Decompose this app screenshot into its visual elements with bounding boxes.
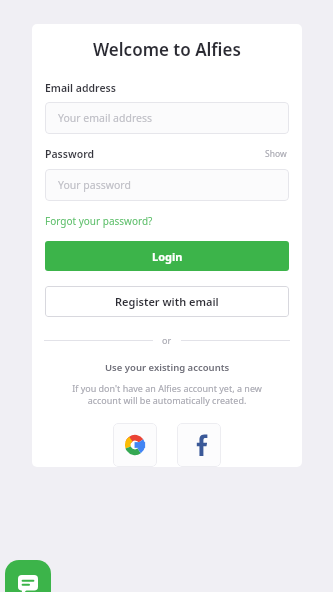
- button[interactable]: Sign in with Facebook: [177, 423, 221, 467]
- button[interactable]: Forgot your password?: [43, 212, 155, 230]
- staticText: Your password: [58, 178, 131, 192]
- staticText: Use your existing accounts: [105, 361, 230, 374]
- staticText: Your email address: [58, 111, 153, 125]
- button[interactable]: Sign in with Google: [113, 423, 157, 467]
- staticText: Password: [45, 147, 95, 161]
- staticText: If you don't have an Alfies account yet,…: [62, 382, 272, 407]
- staticText: Email address: [45, 81, 116, 95]
- button[interactable]: Login: [45, 241, 289, 271]
- staticText: Welcome to Alfies: [93, 38, 241, 61]
- staticText: Register with email: [115, 294, 219, 309]
- staticText: or: [162, 334, 172, 346]
- button[interactable]: Register with email: [45, 286, 289, 317]
- button[interactable]: Show: [263, 146, 289, 162]
- staticText: Login: [152, 249, 183, 264]
- button[interactable]: Open chat: [5, 560, 51, 592]
- button[interactable]: Your email address: [45, 102, 289, 134]
- staticText: Show: [265, 148, 287, 160]
- staticText: Forgot your password?: [45, 214, 153, 228]
- button[interactable]: Your password: [45, 169, 289, 201]
